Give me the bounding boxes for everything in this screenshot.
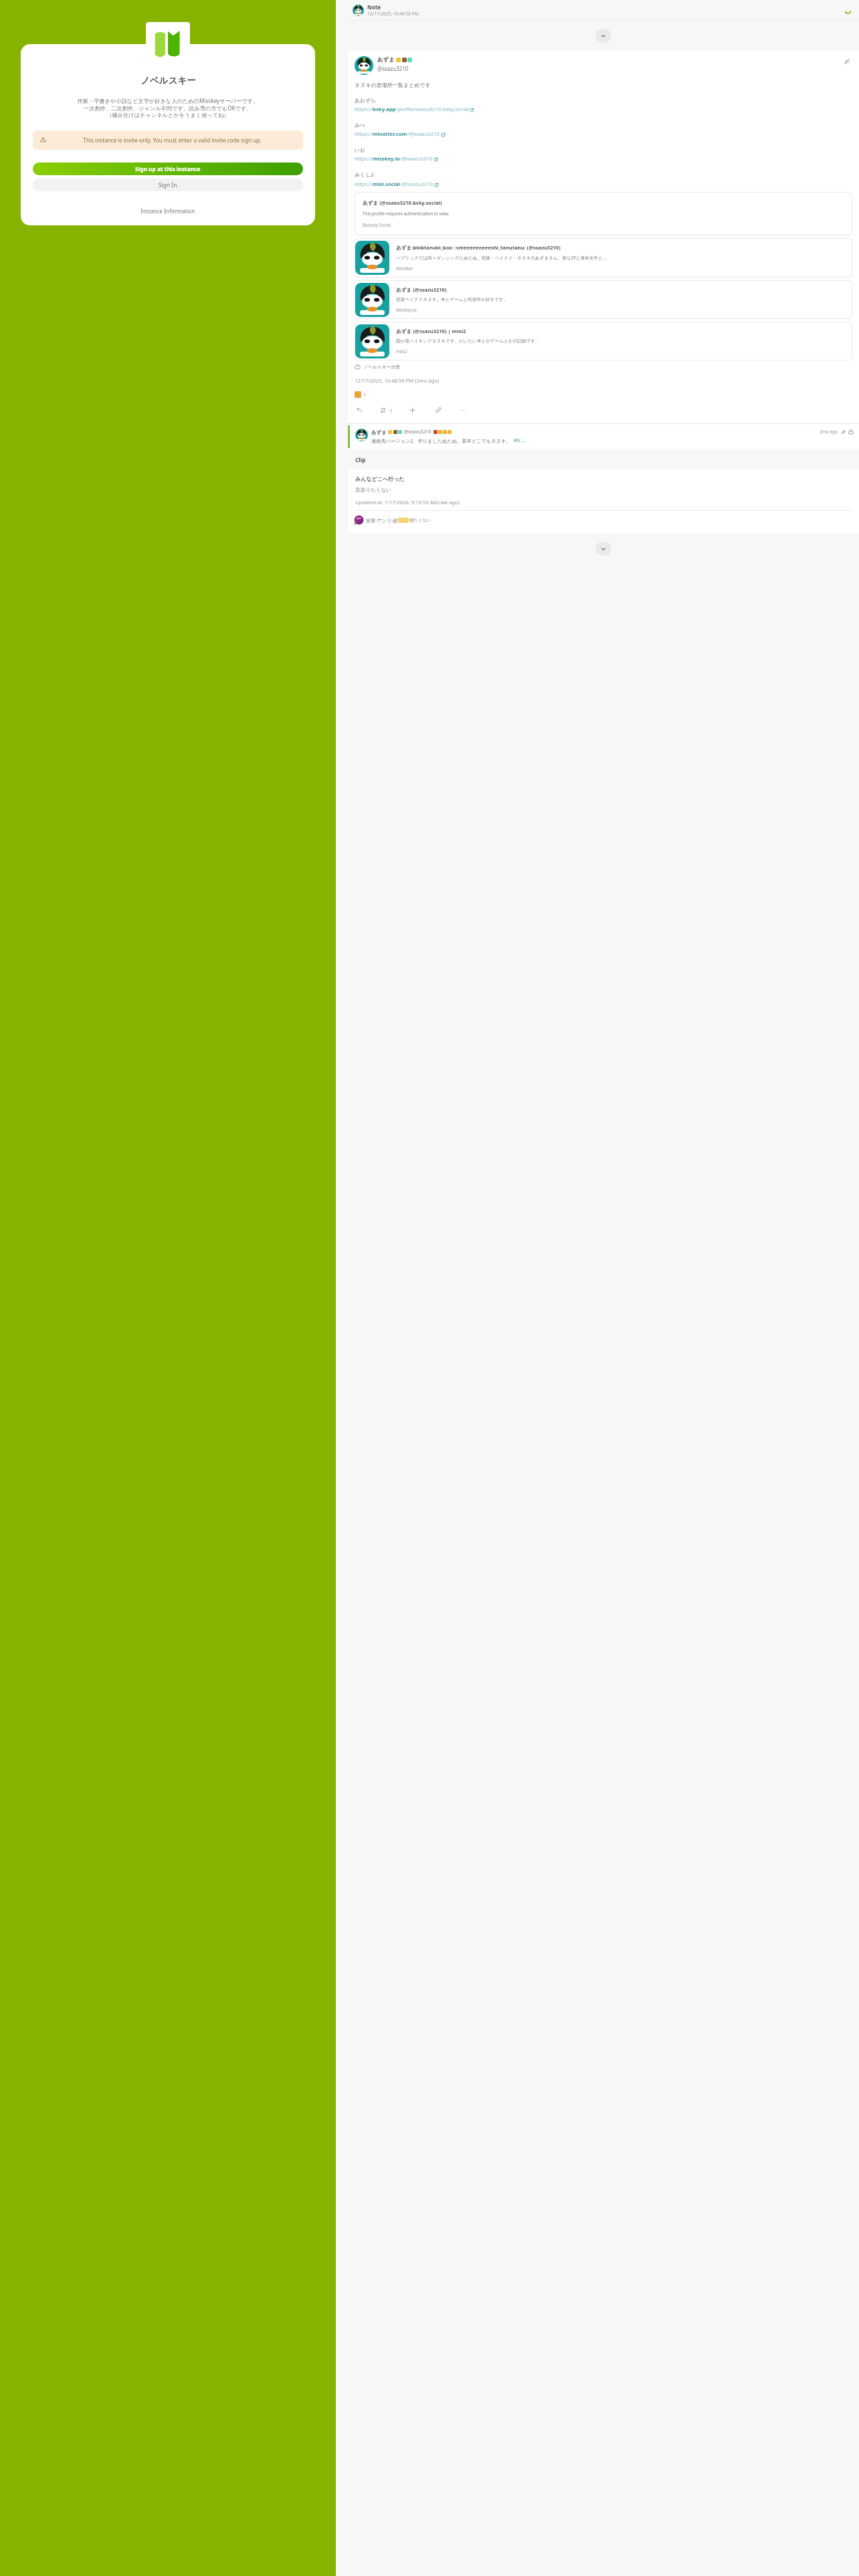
button[interactable]: https:// (355, 106, 474, 113)
staticText: いお (355, 146, 365, 153)
staticText: ノベルスキー分室 (363, 364, 401, 370)
staticText: bsky.app (373, 106, 396, 113)
staticText: @ssazu3210 (377, 65, 409, 72)
staticText: This profile requires authentication to … (363, 211, 450, 217)
staticText: @ssazu3210 (404, 429, 432, 435)
button[interactable]: 安里·アンリ·縒 (348, 511, 859, 529)
staticText: /@ssazu3210 (407, 130, 440, 138)
staticText: Sign In (159, 181, 177, 189)
staticText: あおぞら (355, 97, 376, 104)
staticText: 見送りたくない (355, 487, 392, 494)
staticText: ノベルスキー (140, 75, 196, 86)
button[interactable]: More (458, 405, 468, 415)
staticText: Instance Information (140, 207, 195, 215)
staticText: 我が道ハイキングタヌキです。だいたい本とかゲームとかの記録です。 (396, 338, 540, 344)
staticText: みくし2 (355, 171, 374, 179)
staticText: パブリックでは時々ダンシングたぬたぬ。信楽・ベイクド・タヌキのあずまさん。変なS… (396, 255, 606, 261)
button[interactable]: あずま (350, 424, 859, 449)
staticText: https:// (355, 106, 373, 113)
staticText: https:// (355, 155, 373, 163)
staticText: Mivatter (396, 265, 413, 272)
staticText: misskey.io (373, 155, 400, 163)
staticText: mixi.social (373, 181, 401, 188)
button[interactable]: Reply (355, 405, 365, 415)
staticText: /@ssazu3210 (401, 181, 434, 188)
staticText: Clip (355, 456, 366, 463)
staticText: みんなどこへ行った (355, 475, 405, 482)
staticText: This instance is invite-only. You must e… (49, 136, 296, 144)
staticText: 12/17/2025, 10:48:50 PM (2mo ago) (355, 377, 440, 384)
staticText: https:// (355, 130, 373, 138)
button[interactable]: あずま:blobtanuki_box: :smeeeeeeeeeshi_tanu… (355, 239, 852, 277)
button[interactable]: https:// (355, 181, 439, 188)
staticText: Bluesky Social (363, 222, 391, 228)
staticText: /profile/ssazu3210.bsky.social (396, 106, 469, 113)
staticText: 2mo ago (820, 429, 838, 435)
staticText: 1 (389, 407, 393, 414)
staticText: あずま (377, 56, 395, 64)
staticText: mivatter.com (373, 130, 407, 138)
button[interactable]: Muted (842, 56, 852, 67)
staticText: https:// (355, 181, 373, 188)
button[interactable]: Instance Information (138, 205, 198, 217)
staticText: みべ (355, 122, 365, 128)
button[interactable]: あずま (@ssazu3210) | mixi2 (355, 322, 852, 360)
staticText: あずま (371, 429, 387, 435)
staticText: （棲み分けはチャンネルとかをうまく使ってね） (33, 112, 303, 118)
staticText: 寝たくない (409, 518, 432, 523)
button[interactable]: Sign up at this instance (33, 163, 303, 175)
staticText: mixi2 (396, 348, 407, 354)
staticText: タヌキの居場所一覧まとめです (355, 82, 431, 88)
staticText: 12/17/2025, 10:48:50 PM (367, 11, 419, 17)
staticText: 作家・字書きや小説など文字が好きな人のためのMisskeyサーバーです。 (33, 97, 303, 104)
staticText: 1 (363, 391, 367, 398)
button[interactable]: https:// (355, 130, 446, 138)
staticText: あずま:blobtanuki_box: :smeeeeeeeeeshi_tanu… (396, 244, 561, 251)
staticText: あずま (@ssazu3210) (396, 286, 447, 293)
staticText: あずま (@ssazu3210.bsky.social) (363, 199, 442, 206)
button[interactable]: Sign In (33, 179, 303, 191)
button[interactable]: Load newer notes (595, 29, 611, 43)
staticText: 信楽ベイクドタヌキ。本とゲームと民俗学が好きです。 (396, 297, 508, 302)
staticText: あずま (@ssazu3210) | mixi2 (396, 328, 466, 334)
staticText: Sign up at this instance (135, 165, 201, 173)
button[interactable]: Reaction (355, 391, 367, 398)
staticText: Note (367, 3, 381, 11)
staticText: Misskey.io (396, 307, 417, 313)
staticText: 一次創作、二次創作、ジャンル不問です。読み専の方でもOKです。 (33, 104, 303, 112)
button[interactable]: Clip (434, 405, 444, 415)
button[interactable]: Loading (841, 3, 854, 17)
staticText: 安里·アンリ·縒 (366, 517, 398, 524)
button[interactable]: https:// (355, 155, 438, 163)
button[interactable]: あずま (@ssazu3210) (355, 281, 852, 318)
staticText: Updated at: 1/17/2026, 9:13:53 AM (4w ag… (355, 499, 460, 506)
staticText: /@ssazu3210 (400, 155, 433, 163)
button[interactable]: Renote (379, 407, 393, 414)
button[interactable]: Load older notes (595, 542, 611, 556)
button[interactable]: Add reaction (407, 405, 417, 415)
staticText: RN: … (514, 437, 526, 443)
staticText: 連絡先バージョン2、作りましたぬたぬ。基本どこでもタヌキ。 (371, 437, 511, 444)
